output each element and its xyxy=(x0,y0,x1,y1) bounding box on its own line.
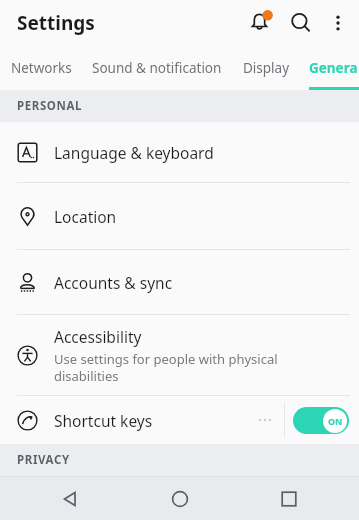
staticText: General xyxy=(309,59,359,77)
staticText: PRIVACY xyxy=(17,452,70,468)
staticText: Shortcut keys xyxy=(54,410,254,431)
staticText: Networks xyxy=(11,59,72,77)
button[interactable]: General xyxy=(309,45,359,90)
staticText: Sound & notification xyxy=(92,59,222,77)
button[interactable]: Notifications xyxy=(241,3,281,43)
button[interactable]: Language & keyboard xyxy=(0,122,359,182)
button[interactable]: Accounts & sync xyxy=(0,250,359,314)
staticText: Display xyxy=(243,59,290,77)
button[interactable]: Sound & notification xyxy=(92,45,222,90)
staticText: Location xyxy=(54,206,117,227)
staticText: PERSONAL xyxy=(17,98,83,114)
button[interactable]: Back xyxy=(30,477,110,520)
button[interactable]: Search xyxy=(281,3,321,43)
button[interactable]: Display xyxy=(243,45,290,90)
button[interactable]: Recent apps xyxy=(249,477,329,520)
staticText: Accessibility xyxy=(54,326,142,347)
button[interactable]: Home xyxy=(140,477,220,520)
button[interactable]: More options xyxy=(321,6,355,40)
staticText: Settings xyxy=(17,10,95,36)
button[interactable]: Shortcut keys toggle, on xyxy=(293,407,349,434)
staticText: Accounts & sync xyxy=(54,272,173,293)
staticText: Language & keyboard xyxy=(54,142,214,163)
staticText: Use settings for people with physical di… xyxy=(54,350,345,385)
button[interactable]: Location xyxy=(0,183,359,249)
button[interactable]: Accessibility xyxy=(0,315,359,395)
button[interactable]: Networks xyxy=(11,45,72,90)
staticText: ON xyxy=(328,415,343,427)
button[interactable]: Shortcut keys xyxy=(0,396,359,444)
